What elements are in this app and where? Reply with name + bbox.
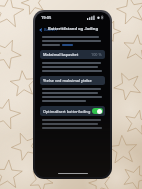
- button[interactable]: Optimalisert batterilading, på: [92, 108, 103, 114]
- staticText: Optimalisert batterilading: [43, 109, 91, 114]
- staticText: Batteri: [44, 27, 57, 32]
- staticText: Maksimal kapasitet: [43, 52, 79, 57]
- staticText: Ytelse ved maksimal ytelse: [43, 78, 92, 83]
- button[interactable]: Optimalisert batterilading: [40, 106, 105, 116]
- button[interactable]: Maksimal kapasitet: [40, 50, 105, 59]
- staticText: 19:05: [41, 15, 52, 20]
- button[interactable]: Tilbake til Batteri: [38, 25, 58, 34]
- staticText: 100 %: [91, 52, 102, 57]
- staticText: Batteritilstand og -lading: [48, 26, 98, 32]
- button[interactable]: Ytelse ved maksimal ytelse: [40, 76, 105, 85]
